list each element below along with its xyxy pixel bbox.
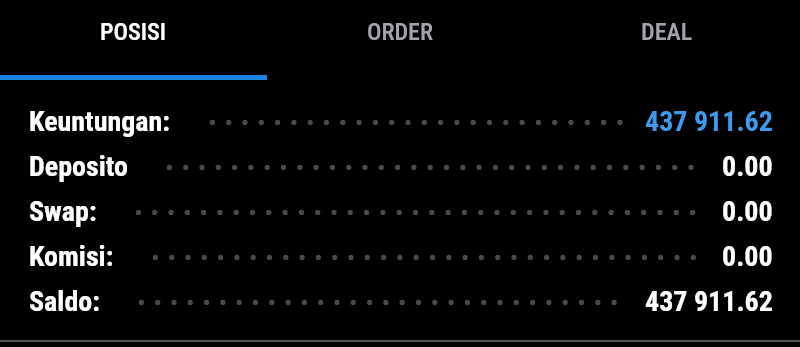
staticText: 437 911.62 bbox=[645, 105, 773, 138]
button[interactable]: Saldo: bbox=[0, 285, 800, 330]
staticText: DEAL bbox=[641, 18, 693, 46]
staticText: 0.00 bbox=[722, 240, 773, 273]
staticText: Saldo: bbox=[29, 285, 100, 318]
staticText: 437 911.62 bbox=[645, 285, 773, 318]
button[interactable]: Swap: bbox=[0, 195, 800, 240]
staticText: Keuntungan: bbox=[29, 105, 171, 138]
button[interactable]: Komisi: bbox=[0, 240, 800, 285]
button[interactable]: POSISI bbox=[0, 0, 266, 80]
staticText: 0.00 bbox=[722, 195, 773, 228]
staticText: Deposito bbox=[29, 150, 128, 183]
button[interactable]: ORDER bbox=[266, 0, 533, 80]
staticText: POSISI bbox=[100, 18, 167, 46]
staticText: 0.00 bbox=[722, 150, 773, 183]
staticText: ORDER bbox=[367, 18, 433, 46]
button[interactable]: DEAL bbox=[533, 0, 800, 80]
button[interactable]: Deposito bbox=[0, 150, 800, 195]
staticText: Swap: bbox=[29, 195, 97, 228]
button[interactable]: Keuntungan: bbox=[0, 105, 800, 150]
staticText: Komisi: bbox=[29, 240, 114, 273]
